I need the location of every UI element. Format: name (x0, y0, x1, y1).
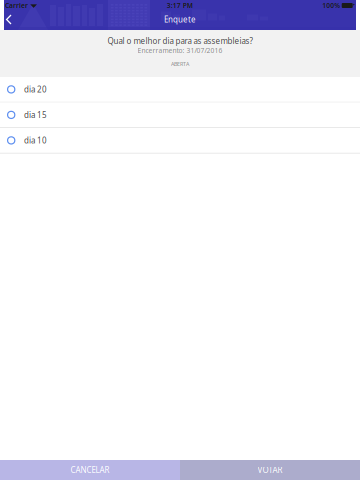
staticText: dia 15 (24, 110, 47, 120)
button[interactable]: dia 15 (0, 102, 360, 127)
staticText: Enquete (164, 14, 196, 25)
staticText: dia 10 (24, 135, 47, 146)
staticText: Encerramento: 31/07/2016 (137, 46, 222, 55)
button[interactable]: dia 10 (0, 128, 360, 153)
button[interactable]: dia 20 (0, 77, 360, 102)
staticText: ABERTA (171, 60, 189, 68)
staticText: CANCELAR (70, 465, 109, 475)
staticText: dia 20 (24, 84, 47, 95)
button[interactable]: CANCELAR (0, 460, 180, 480)
button[interactable]: VOTAR (180, 460, 360, 480)
staticText: Qual o melhor dia para as assembleias? (107, 36, 252, 46)
staticText: Carrier (5, 1, 28, 10)
button[interactable]: Back (4, 11, 14, 27)
staticText: 3:17 PM (167, 1, 193, 10)
staticText: VOTAR (257, 465, 282, 475)
staticText: 100% (322, 1, 340, 10)
